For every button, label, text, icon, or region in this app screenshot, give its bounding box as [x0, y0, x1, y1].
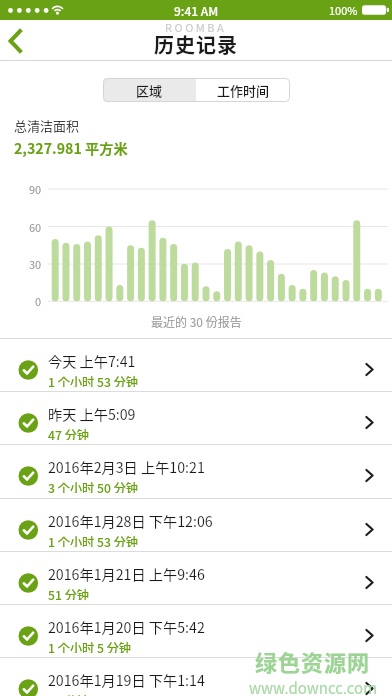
staticText: 最近的 30 份报告	[151, 313, 242, 329]
staticText: 2016年1月19日 下午1:14	[48, 670, 205, 688]
button[interactable]: 2016年1月21日 上午9:46	[0, 551, 392, 604]
staticText: 总清洁面积	[14, 116, 80, 134]
button[interactable]: 2016年2月3日 上午10:21	[0, 444, 392, 497]
staticText: 30	[29, 256, 42, 272]
staticText: 9:41 AM	[174, 2, 219, 19]
button[interactable]: 区域	[103, 78, 196, 102]
staticText: 100%	[329, 2, 358, 18]
staticText: ROOMBA	[165, 19, 227, 35]
staticText: 60	[29, 219, 42, 235]
staticText: 昨天 上午5:09	[48, 404, 136, 422]
staticText: 今天 上午7:41	[48, 351, 136, 369]
staticText: 2016年1月20日 下午5:42	[48, 617, 205, 635]
staticText: 区域	[136, 81, 163, 100]
staticText: 90	[29, 181, 42, 197]
staticText: 绿色资源网	[255, 645, 371, 677]
button[interactable]: 2016年1月20日 下午5:42	[0, 604, 392, 657]
staticText: 2016年2月3日 上午10:21	[48, 457, 205, 475]
staticText: 1 个小时 5 分钟	[48, 639, 132, 653]
staticText: 2016年1月28日 下午12:06	[48, 511, 213, 529]
button[interactable]: 工作时间	[196, 78, 290, 102]
staticText: www.downcc.com	[249, 677, 378, 696]
button[interactable]	[2, 22, 38, 61]
staticText: 51 分钟	[48, 586, 90, 600]
staticText: 1 个小时 53 分钟	[48, 373, 139, 387]
staticText: 工作时间	[217, 81, 270, 100]
staticText: 历史记录	[154, 30, 238, 56]
button[interactable]: 2016年1月19日 下午1:14	[0, 657, 392, 696]
staticText: 47 分钟	[48, 426, 90, 440]
staticText: 1 个小时 53 分钟	[48, 533, 139, 547]
staticText: 42 分钟	[48, 692, 90, 696]
button[interactable]: 2016年1月28日 下午12:06	[0, 498, 392, 551]
staticText: 2016年1月21日 上午9:46	[48, 564, 205, 582]
button[interactable]: 昨天 上午5:09	[0, 391, 392, 444]
staticText: 2,327.981 平方米	[14, 138, 128, 157]
button[interactable]: 今天 上午7:41	[0, 338, 392, 391]
staticText: 0	[35, 293, 42, 309]
staticText: 3 个小时 50 分钟	[48, 479, 139, 493]
